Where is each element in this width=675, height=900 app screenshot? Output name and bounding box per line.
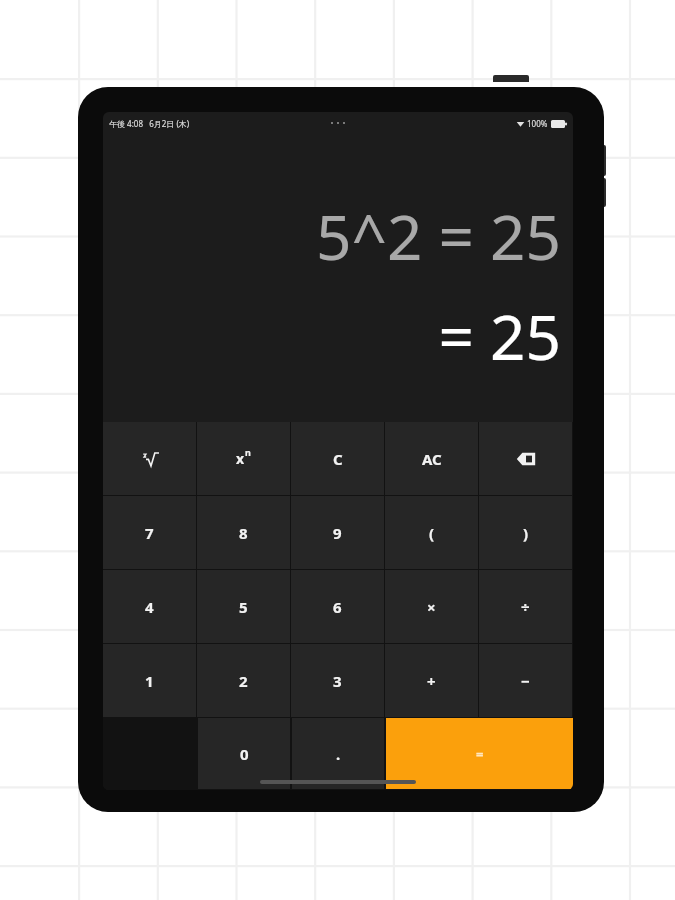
button[interactable]: 2 bbox=[197, 644, 290, 717]
button[interactable]: 9 bbox=[291, 496, 384, 569]
staticText: 2 bbox=[239, 671, 248, 691]
button[interactable]: x bbox=[197, 422, 290, 495]
staticText: 0 bbox=[240, 744, 249, 764]
button[interactable] bbox=[103, 422, 196, 495]
staticText: ) bbox=[523, 523, 529, 543]
staticText: 5 bbox=[239, 597, 248, 617]
staticText: 6 bbox=[333, 597, 342, 617]
staticText: ÷ bbox=[521, 597, 530, 617]
button[interactable]: 8 bbox=[197, 496, 290, 569]
button[interactable]: 0 bbox=[198, 718, 290, 789]
button[interactable]: AC bbox=[385, 422, 478, 495]
button[interactable]: 5 bbox=[197, 570, 290, 643]
staticText: ( bbox=[429, 523, 435, 543]
staticText: 7 bbox=[145, 523, 154, 543]
button[interactable]: . bbox=[292, 718, 384, 789]
staticText: = 25 bbox=[438, 294, 561, 378]
staticText: . bbox=[336, 744, 341, 764]
staticText: 午後 4:08 6月2日 (木) bbox=[109, 118, 190, 129]
staticText: − bbox=[521, 671, 530, 691]
button[interactable]: = bbox=[386, 718, 573, 789]
button[interactable]: ( bbox=[385, 496, 478, 569]
staticText: 9 bbox=[333, 523, 342, 543]
staticText: n bbox=[245, 446, 251, 458]
button[interactable]: 1 bbox=[103, 644, 196, 717]
button[interactable]: ÷ bbox=[479, 570, 572, 643]
staticText: + bbox=[427, 671, 436, 691]
staticText: x bbox=[236, 449, 245, 468]
button[interactable]: 4 bbox=[103, 570, 196, 643]
staticText: C bbox=[333, 449, 343, 469]
staticText: 3 bbox=[333, 671, 342, 691]
button[interactable]: Backspace bbox=[479, 422, 572, 495]
staticText: × bbox=[427, 597, 436, 617]
staticText: 100% bbox=[527, 118, 548, 129]
button[interactable]: ) bbox=[479, 496, 572, 569]
button[interactable]: 7 bbox=[103, 496, 196, 569]
button[interactable]: 3 bbox=[291, 644, 384, 717]
button[interactable]: C bbox=[291, 422, 384, 495]
staticText: = bbox=[476, 745, 484, 763]
staticText: AC bbox=[422, 449, 442, 469]
button[interactable]: − bbox=[479, 644, 572, 717]
button[interactable]: 6 bbox=[291, 570, 384, 643]
staticText: 5^2 = 25 bbox=[315, 194, 561, 278]
staticText: 8 bbox=[239, 523, 248, 543]
button[interactable]: × bbox=[385, 570, 478, 643]
staticText: 4 bbox=[145, 597, 154, 617]
button[interactable]: + bbox=[385, 644, 478, 717]
staticText: 1 bbox=[145, 671, 154, 691]
